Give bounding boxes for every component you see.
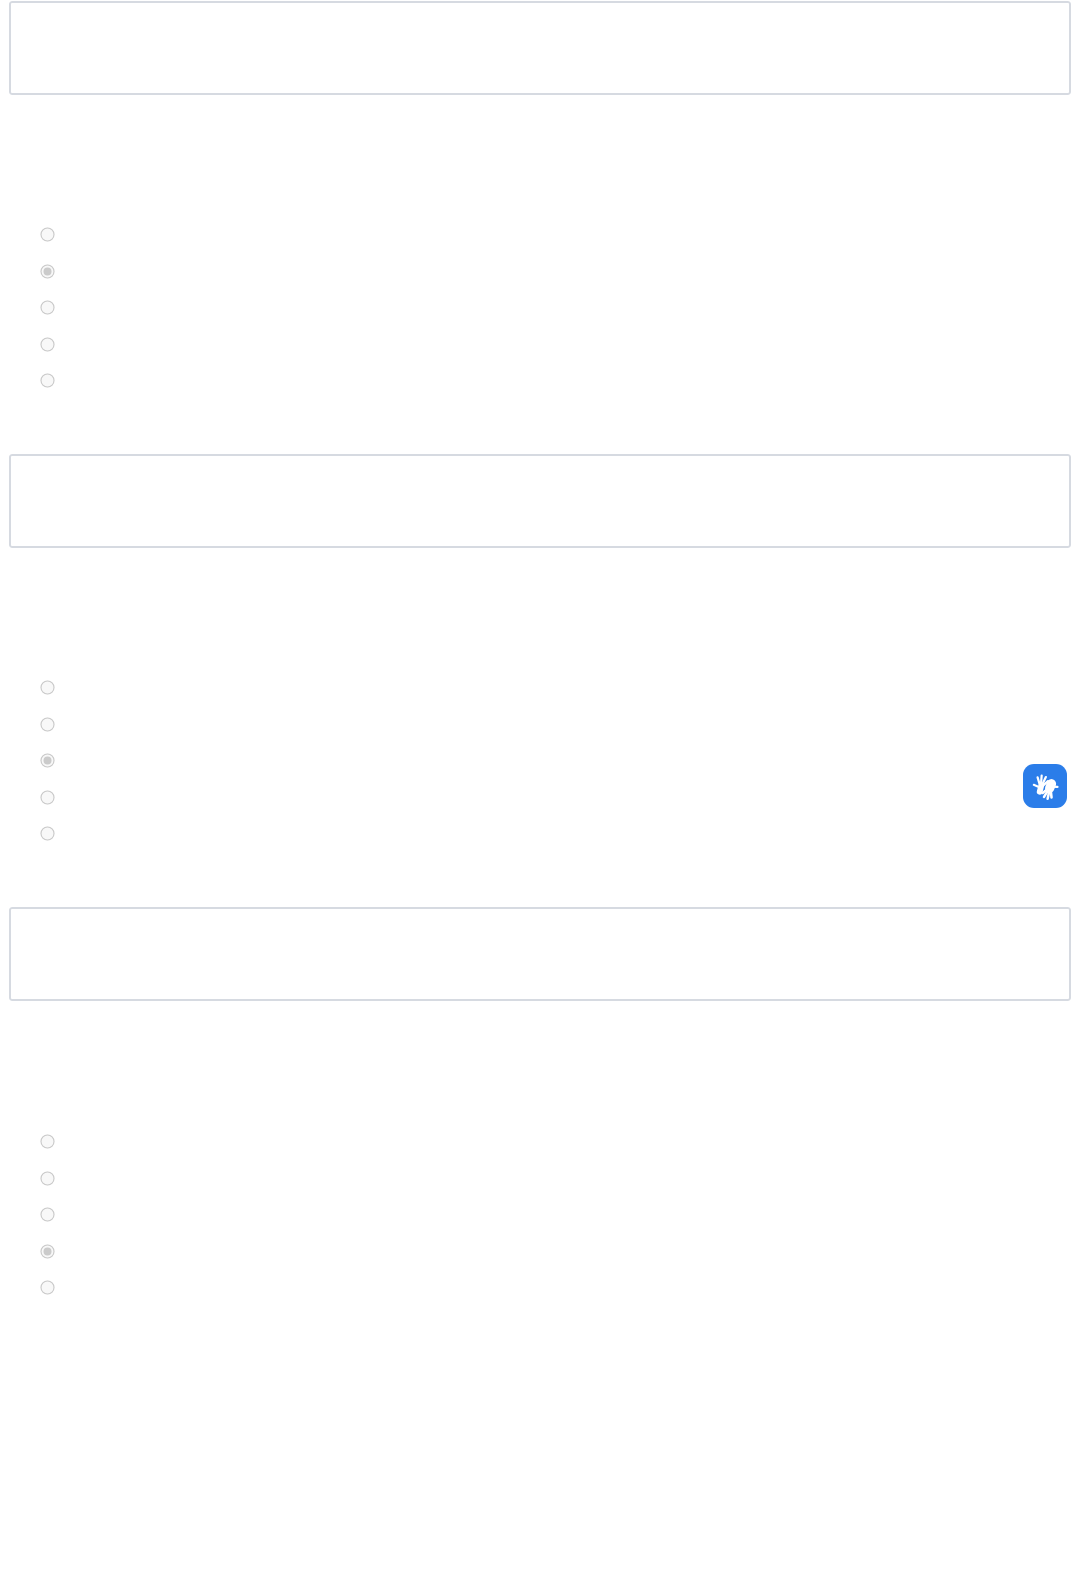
button[interactable] [20,745,740,775]
button[interactable] [9,907,1071,1001]
button[interactable] [9,454,1071,548]
button[interactable] [9,1,1071,95]
button[interactable] [20,256,740,286]
button[interactable]: Sign language interpretation [1023,764,1067,808]
button[interactable] [20,1236,740,1266]
